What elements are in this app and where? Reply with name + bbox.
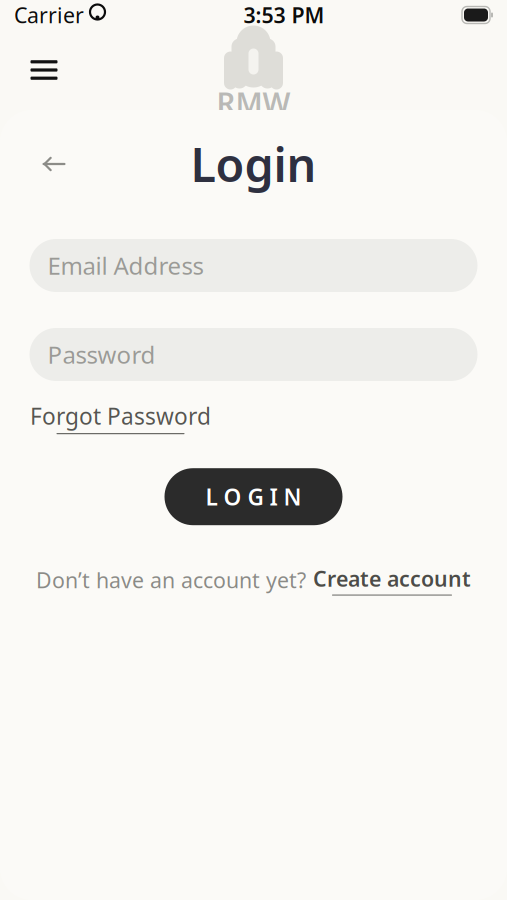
staticText: 3:53 PM [243, 1, 324, 29]
staticText: Forgot Password [30, 401, 211, 431]
button[interactable]: Forgot Password [30, 401, 211, 434]
staticText: Email Address [47, 250, 203, 281]
button[interactable]: Menu [22, 48, 66, 92]
staticText: Don’t have an account yet? [36, 566, 306, 594]
staticText: RMW [216, 82, 290, 121]
button[interactable]: Create account [313, 564, 471, 596]
staticText: Password [47, 339, 155, 370]
staticText: L O G I N [205, 482, 301, 512]
staticText: Login [190, 133, 316, 195]
button[interactable]: L O G I N [164, 468, 342, 525]
button[interactable]: Back [31, 141, 77, 187]
staticText: Create account [313, 564, 471, 592]
staticText: Carrier [14, 1, 84, 29]
